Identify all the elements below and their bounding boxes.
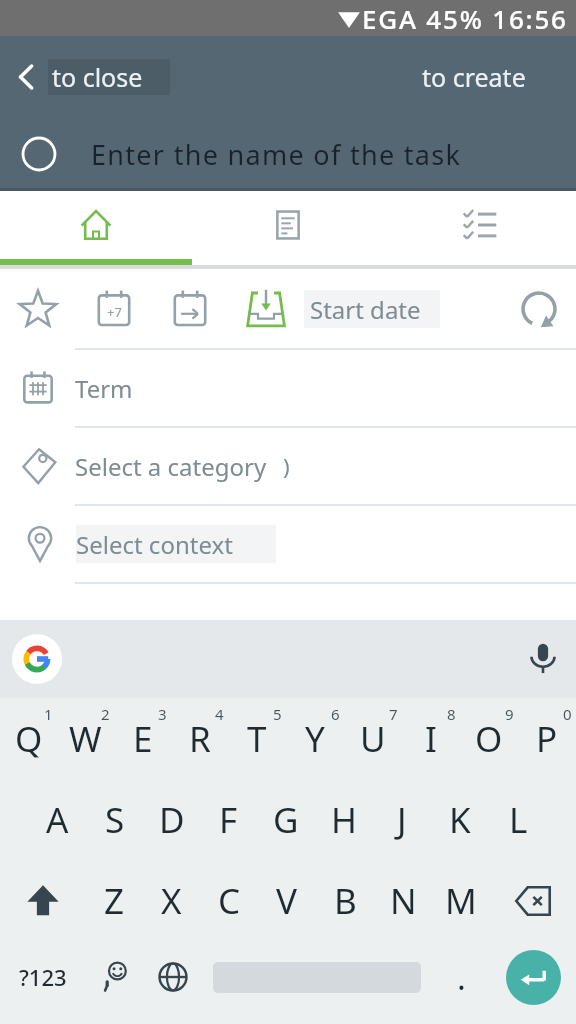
- staticText: X: [161, 877, 182, 925]
- staticText: 1: [44, 704, 53, 724]
- button[interactable]: I: [402, 698, 460, 779]
- button[interactable]: X: [143, 860, 200, 942]
- staticText: S: [105, 796, 125, 844]
- button[interactable]: B: [316, 860, 374, 942]
- staticText: R: [189, 715, 211, 763]
- staticText: Select a category: [75, 450, 267, 483]
- button[interactable]: [12, 634, 62, 684]
- staticText: L: [509, 796, 528, 844]
- staticText: 6: [331, 704, 340, 724]
- button[interactable]: N: [374, 860, 432, 942]
- staticText: E: [133, 715, 153, 763]
- staticText: .: [457, 955, 466, 1000]
- button[interactable]: J: [373, 779, 431, 860]
- staticText: A: [46, 796, 69, 844]
- button[interactable]: T: [228, 698, 286, 779]
- button[interactable]: [0, 860, 86, 942]
- staticText: Enter the name of the task: [91, 136, 462, 173]
- button[interactable]: L: [489, 779, 547, 860]
- button[interactable]: A: [29, 779, 86, 860]
- staticText: ?123: [19, 962, 67, 992]
- staticText: G: [273, 796, 299, 844]
- staticText: W: [69, 715, 102, 763]
- button[interactable]: ?123: [0, 936, 86, 1018]
- staticText: H: [331, 796, 357, 844]
- staticText: K: [449, 796, 471, 844]
- staticText: to close: [52, 60, 143, 94]
- staticText: Q: [15, 715, 43, 763]
- button[interactable]: R: [171, 698, 228, 779]
- button[interactable]: [524, 640, 562, 678]
- button[interactable]: C: [200, 860, 258, 942]
- staticText: 8: [447, 704, 456, 724]
- staticText: C: [218, 877, 241, 925]
- button[interactable]: V: [258, 860, 316, 942]
- button[interactable]: W: [57, 698, 114, 779]
- button[interactable]: P: [518, 698, 576, 779]
- button[interactable]: M: [432, 860, 490, 942]
- staticText: +7: [107, 303, 122, 321]
- button[interactable]: Z: [86, 860, 143, 942]
- button[interactable]: K: [431, 779, 489, 860]
- button[interactable]: Q: [0, 698, 57, 779]
- staticText: 3: [158, 704, 167, 724]
- staticText: M: [445, 877, 477, 925]
- staticText: V: [276, 877, 298, 925]
- staticText: 4: [215, 704, 224, 724]
- button[interactable]: [144, 936, 202, 1018]
- button[interactable]: to close: [48, 59, 170, 95]
- staticText: 5: [273, 704, 282, 724]
- staticText: P: [536, 715, 558, 763]
- staticText: B: [334, 877, 357, 925]
- staticText: I: [425, 715, 437, 763]
- staticText: EGA 45% 16:56: [362, 1, 568, 36]
- button[interactable]: O: [460, 698, 518, 779]
- staticText: 7: [389, 704, 398, 724]
- staticText: O: [475, 715, 503, 763]
- staticText: to create: [422, 60, 526, 94]
- button[interactable]: [490, 936, 576, 1018]
- button[interactable]: S: [86, 779, 143, 860]
- button[interactable]: G: [257, 779, 315, 860]
- staticText: Select context: [76, 528, 233, 561]
- staticText: D: [159, 796, 185, 844]
- button[interactable]: Select a category: [0, 428, 576, 504]
- button[interactable]: H: [315, 779, 373, 860]
- button[interactable]: Y: [286, 698, 344, 779]
- button[interactable]: to create: [422, 60, 526, 94]
- staticText: Y: [305, 715, 325, 763]
- button[interactable]: +7: [0, 269, 576, 348]
- button[interactable]: [86, 936, 144, 1018]
- button[interactable]: Term: [0, 350, 576, 426]
- button[interactable]: Start date: [304, 290, 440, 328]
- staticText: Start date: [310, 293, 421, 326]
- button[interactable]: D: [143, 779, 200, 860]
- button[interactable]: F: [200, 779, 257, 860]
- staticText: T: [247, 715, 267, 763]
- button[interactable]: [213, 936, 421, 1018]
- staticText: 2: [101, 704, 110, 724]
- staticText: 9: [505, 704, 514, 724]
- staticText: ): [283, 451, 290, 481]
- staticText: U: [360, 715, 386, 763]
- button[interactable]: [490, 860, 576, 942]
- button[interactable]: [0, 191, 192, 259]
- button[interactable]: [192, 191, 384, 259]
- button[interactable]: [384, 191, 576, 259]
- button[interactable]: .: [432, 936, 490, 1018]
- staticText: 0: [563, 704, 572, 724]
- staticText: Z: [104, 877, 125, 925]
- button[interactable]: Select context: [0, 506, 576, 582]
- staticText: Term: [75, 372, 133, 405]
- button[interactable]: E: [114, 698, 171, 779]
- staticText: F: [219, 796, 238, 844]
- staticText: N: [390, 877, 417, 925]
- staticText: J: [397, 796, 407, 844]
- button[interactable]: U: [344, 698, 402, 779]
